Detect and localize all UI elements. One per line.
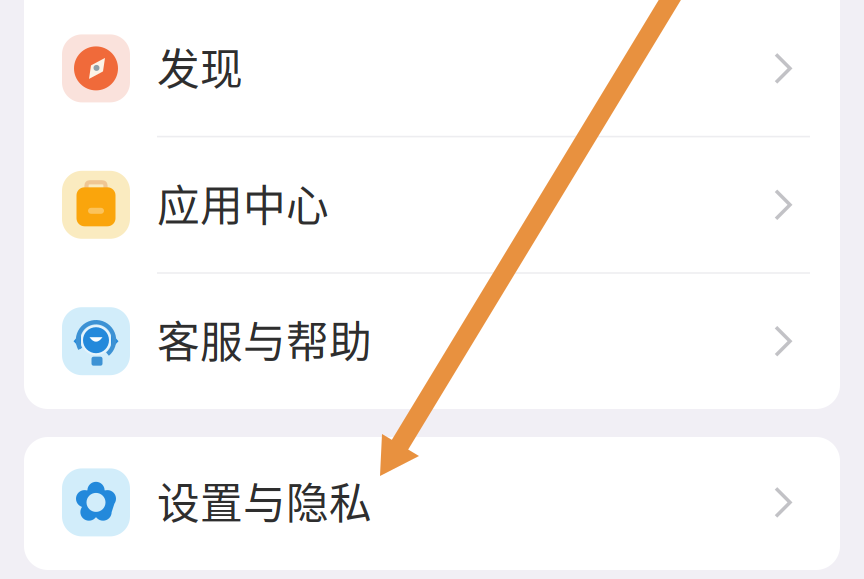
staticText: 发现 <box>157 35 243 97</box>
button[interactable]: 设置与隐私 <box>24 435 840 570</box>
staticText: 客服与帮助 <box>157 308 372 370</box>
button[interactable]: 应用中心 <box>24 137 840 272</box>
staticText: 应用中心 <box>157 172 329 234</box>
button[interactable]: 发现 <box>24 1 840 136</box>
staticText: 设置与隐私 <box>157 469 372 531</box>
button[interactable]: 客服与帮助 <box>24 274 840 409</box>
